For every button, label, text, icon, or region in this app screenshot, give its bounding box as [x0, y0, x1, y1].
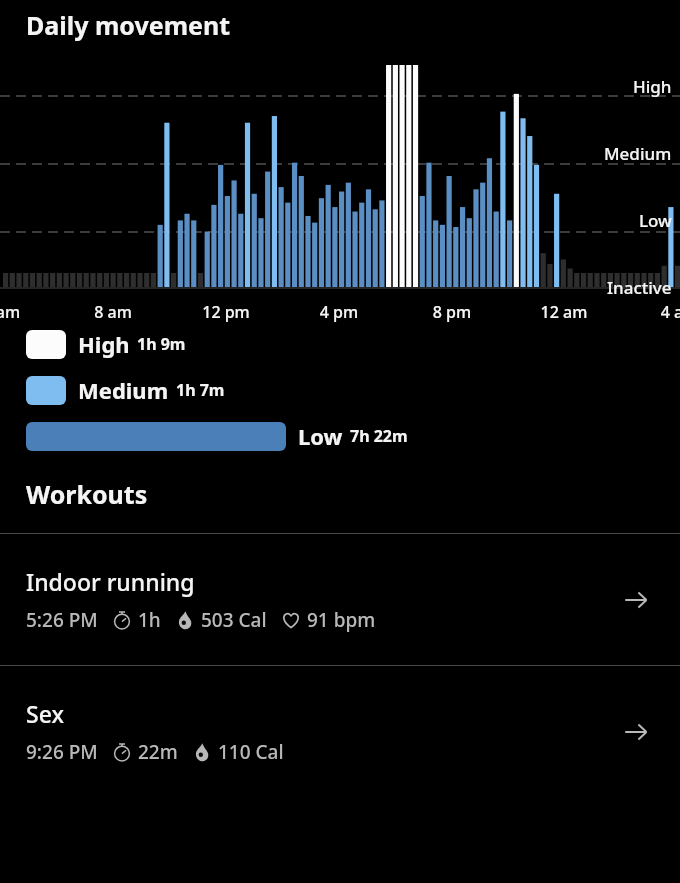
staticText: Inactive: [607, 276, 672, 299]
staticText: 110 Cal: [218, 739, 284, 765]
staticText: High: [78, 329, 130, 359]
staticText: Indoor running: [26, 566, 195, 597]
button[interactable]: Low: [0, 421, 680, 451]
staticText: 1h 9m: [137, 333, 186, 355]
staticText: 8 am: [73, 301, 153, 323]
staticText: 12 am: [524, 301, 604, 323]
button[interactable]: Open Sex details: [616, 712, 656, 752]
staticText: 4 pm: [299, 301, 379, 323]
staticText: Medium: [78, 375, 169, 405]
staticText: Sex: [26, 698, 64, 729]
staticText: Low: [298, 421, 343, 451]
staticText: 9:26 PM: [26, 739, 98, 765]
button[interactable]: Medium: [0, 375, 680, 405]
staticText: 1h: [138, 607, 161, 633]
staticText: 503 Cal: [201, 607, 267, 633]
staticText: Workouts: [26, 477, 148, 511]
button[interactable]: Open Indoor running details: [616, 580, 656, 620]
staticText: Low: [639, 209, 672, 232]
staticText: 22m: [138, 739, 178, 765]
staticText: 1h 7m: [176, 379, 225, 401]
button[interactable]: Sex: [0, 666, 680, 797]
staticText: 12 pm: [186, 301, 266, 323]
staticText: 8 pm: [412, 301, 492, 323]
staticText: 5:26 PM: [26, 607, 98, 633]
button[interactable]: High: [0, 329, 680, 359]
staticText: am: [0, 301, 48, 323]
staticText: Medium: [604, 142, 672, 165]
staticText: 7h 22m: [350, 425, 408, 447]
staticText: 91 bpm: [307, 607, 376, 633]
staticText: Daily movement: [26, 8, 231, 42]
button[interactable]: Indoor running: [0, 534, 680, 665]
staticText: High: [633, 75, 672, 98]
staticText: 4 a: [632, 301, 680, 323]
